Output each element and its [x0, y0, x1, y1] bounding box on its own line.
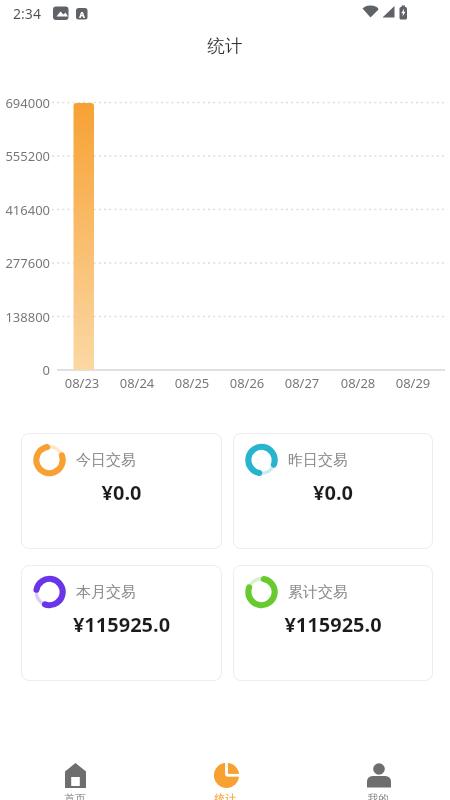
staticText: 统计 — [0, 35, 450, 57]
staticText: 277600 — [0, 254, 50, 272]
staticText: 08/26 — [220, 374, 274, 392]
button[interactable]: 昨日交易 — [233, 433, 433, 549]
staticText: 2:34 — [9, 4, 45, 22]
staticText: 统计 — [175, 792, 275, 800]
staticText: 416400 — [0, 201, 50, 219]
staticText: 555200 — [0, 147, 50, 165]
button[interactable]: 统计 — [175, 756, 275, 800]
staticText: 08/25 — [165, 374, 219, 392]
button[interactable]: 本月交易 — [21, 565, 222, 681]
staticText: 08/27 — [275, 374, 329, 392]
staticText: 08/23 — [55, 374, 109, 392]
button[interactable]: 我的 — [328, 756, 428, 800]
staticText: 08/29 — [386, 374, 440, 392]
staticText: ¥0.0 — [233, 479, 433, 505]
staticText: 本月交易 — [76, 583, 176, 602]
button[interactable]: 累计交易 — [233, 565, 433, 681]
staticText: 0 — [0, 361, 50, 379]
staticText: 08/28 — [331, 374, 385, 392]
staticText: 08/24 — [110, 374, 164, 392]
staticText: 累计交易 — [288, 583, 388, 602]
staticText: 138800 — [0, 308, 50, 326]
staticText: ¥115925.0 — [233, 611, 433, 637]
staticText: ¥0.0 — [21, 479, 222, 505]
button[interactable]: 今日交易 — [21, 433, 222, 549]
staticText: ¥115925.0 — [21, 611, 222, 637]
staticText: 694000 — [0, 94, 50, 112]
staticText: 昨日交易 — [288, 451, 388, 470]
button[interactable]: 首页 — [25, 756, 125, 800]
staticText: A — [76, 9, 88, 20]
staticText: 首页 — [25, 792, 125, 800]
staticText: 我的 — [328, 792, 428, 800]
staticText: 今日交易 — [76, 451, 176, 470]
